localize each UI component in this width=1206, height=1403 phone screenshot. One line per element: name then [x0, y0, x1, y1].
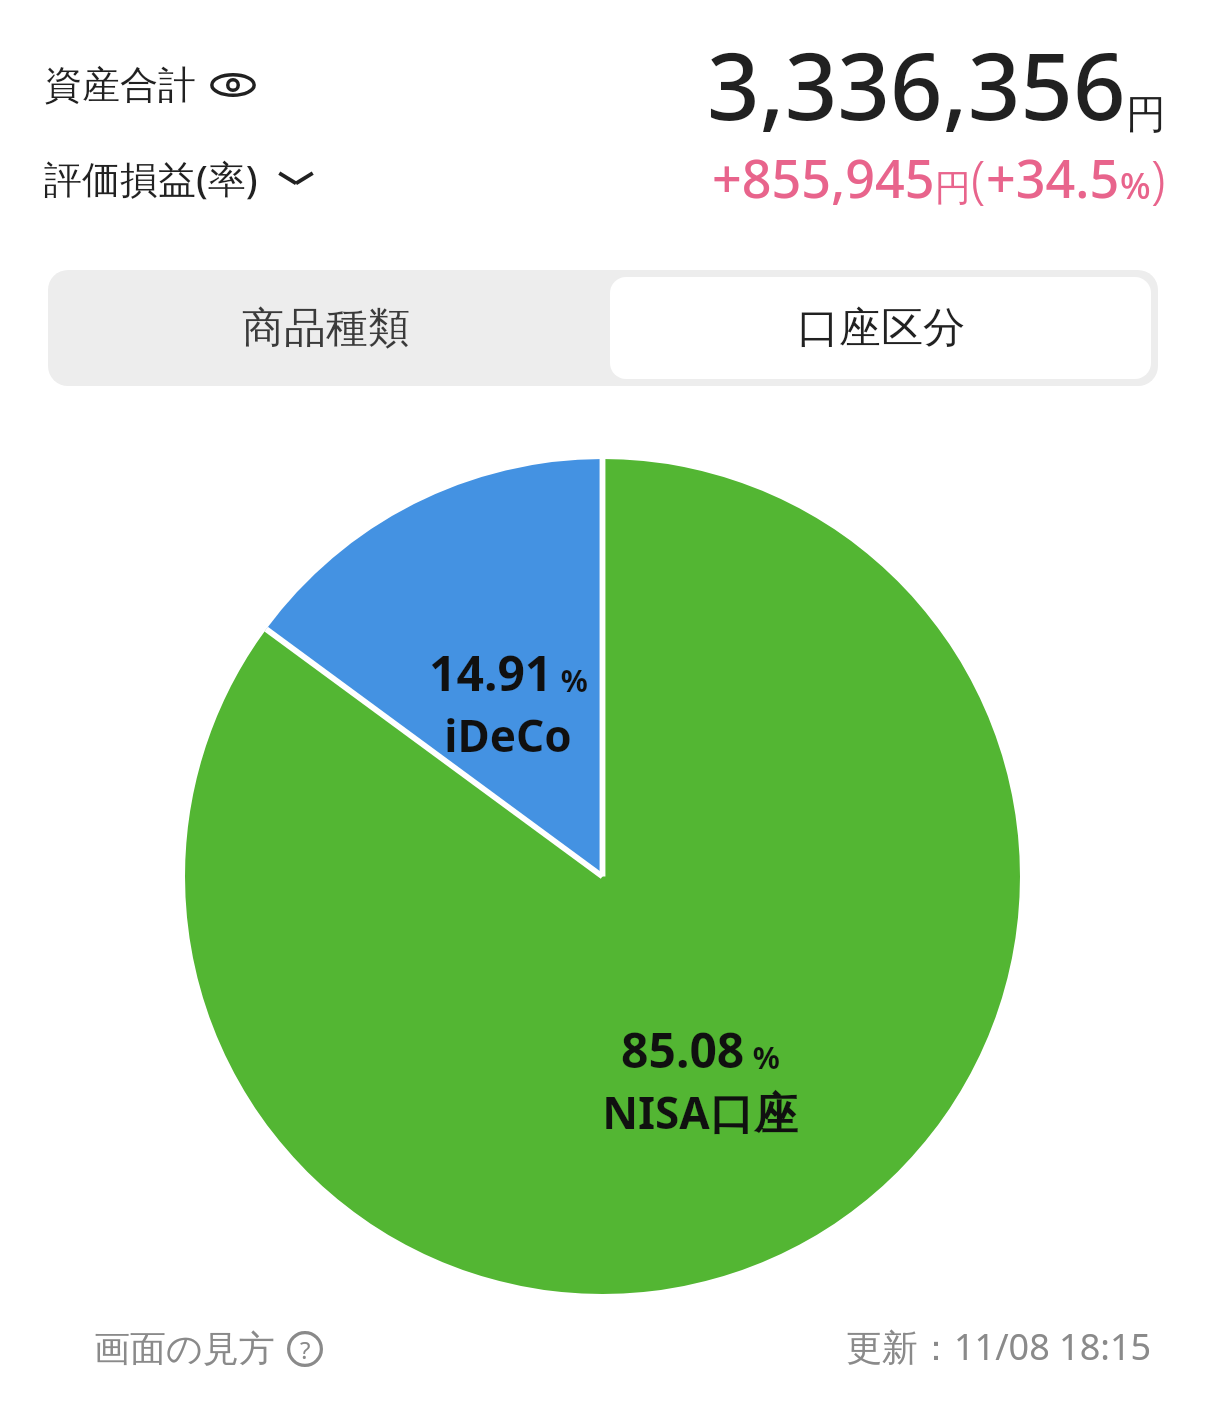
staticText: 円 [935, 165, 971, 210]
staticText: iDeCo [444, 705, 572, 765]
staticText: 画面の見方 [94, 1326, 275, 1371]
staticText: 14.91 [429, 640, 553, 705]
staticText: % [745, 1037, 780, 1078]
staticText: ( [971, 142, 986, 213]
staticText: +855,945 [712, 142, 935, 213]
staticText: 85.08 [621, 1017, 745, 1082]
button[interactable]: 資産合計 [44, 57, 256, 113]
staticText: 資産合計 [44, 61, 196, 109]
staticText: % [553, 660, 588, 701]
staticText: % [1120, 161, 1151, 210]
button[interactable]: 評価損益(率) [44, 148, 318, 208]
button[interactable]: 画面の見方 [90, 1322, 327, 1375]
staticText: 円 [1126, 89, 1166, 139]
staticText: NISA口座 [602, 1082, 798, 1142]
button[interactable]: 口座区分 [610, 277, 1151, 379]
staticText: +34.5 [986, 142, 1120, 213]
staticText: ? [300, 1333, 311, 1366]
button[interactable]: 商品種類 [48, 270, 603, 386]
staticText: ) [1151, 142, 1166, 213]
other: 資産合計の表示切替 [210, 68, 256, 102]
staticText: 3,336,356 [707, 22, 1126, 147]
staticText: 口座区分 [797, 302, 965, 355]
staticText: 更新：11/08 18:15 [846, 1322, 1152, 1371]
staticText: 評価損益(率) [44, 152, 258, 204]
other: 損益の詳細を開く [274, 163, 318, 193]
staticText: 商品種類 [242, 302, 410, 355]
